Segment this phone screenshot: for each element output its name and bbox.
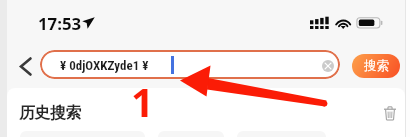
button[interactable]: Clear text xyxy=(322,60,334,72)
staticText: 17:53 xyxy=(38,12,82,35)
button[interactable]: Clear search history xyxy=(380,102,400,124)
button[interactable]: Back xyxy=(13,52,37,80)
staticText: 历史搜索 xyxy=(19,103,81,123)
staticText: 1 xyxy=(131,74,154,128)
button[interactable]: ¥ 0djOXKZyde1 ¥ xyxy=(40,50,340,79)
button[interactable]: 搜索 xyxy=(352,54,400,78)
staticText: 搜索 xyxy=(364,58,389,74)
staticText: ¥ 0djOXKZyde1 ¥ xyxy=(60,58,149,73)
